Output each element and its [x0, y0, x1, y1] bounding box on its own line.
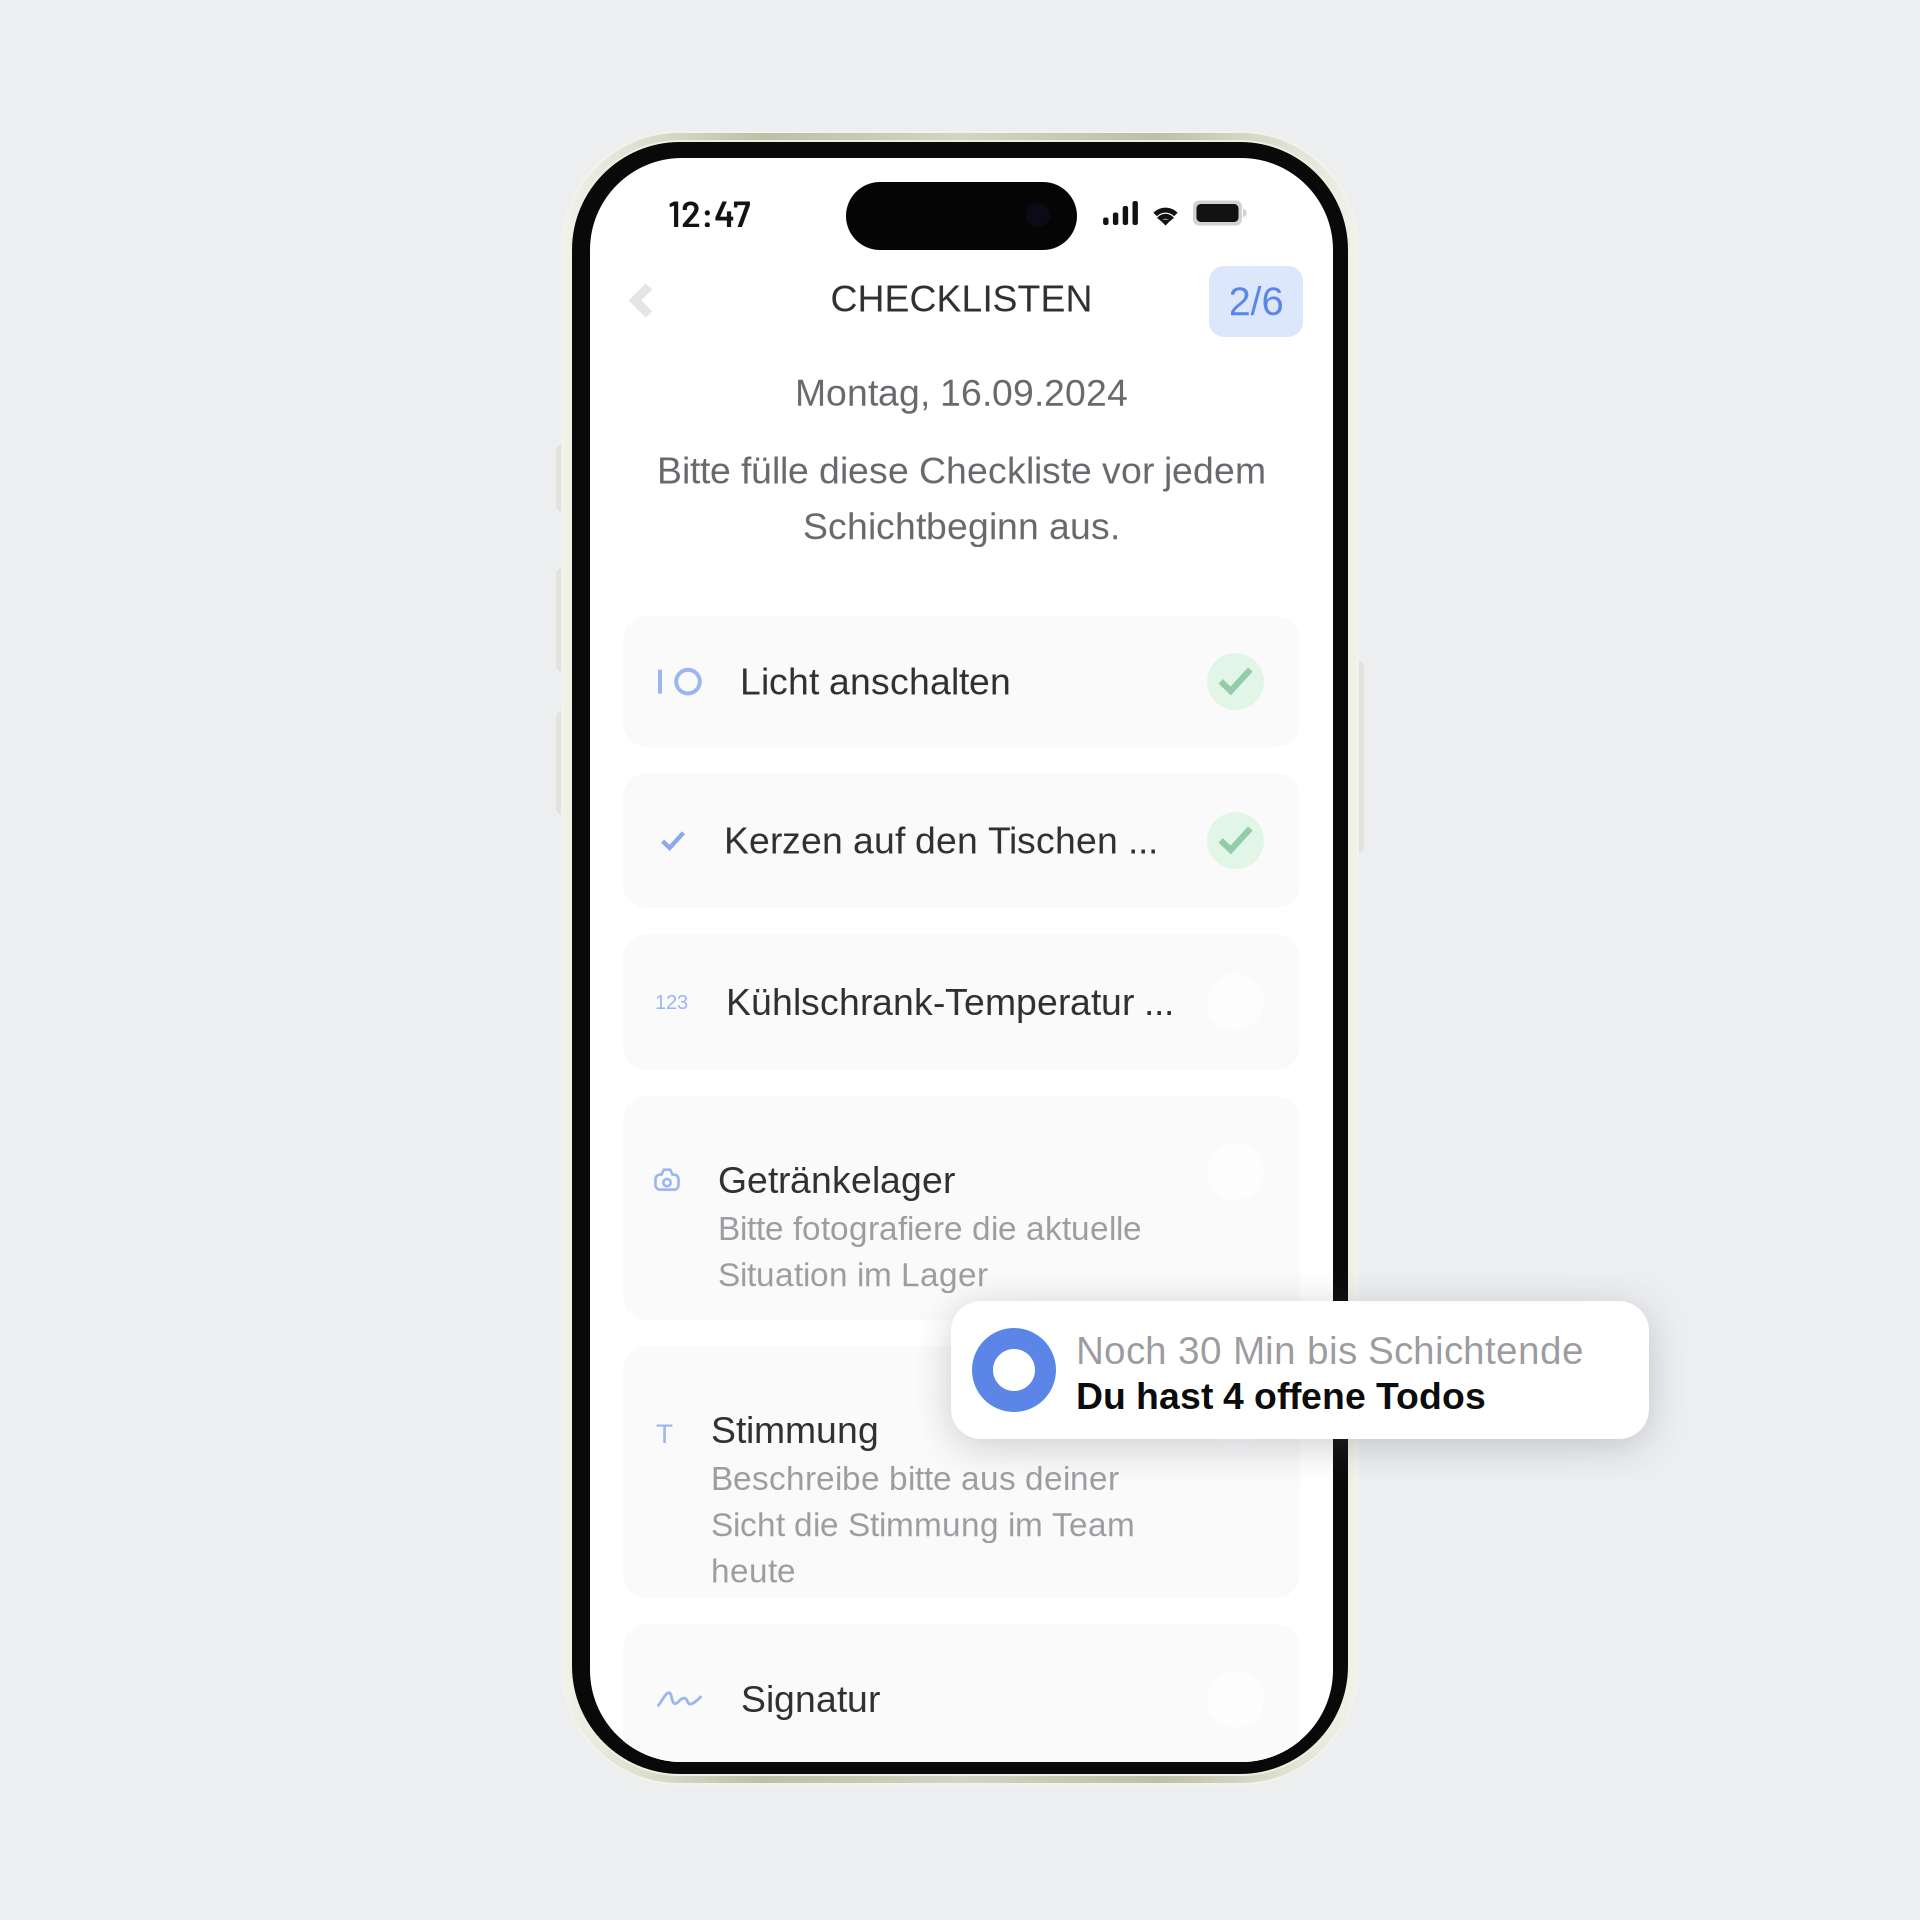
button[interactable]: Noch 30 Min bis Schichtende: [951, 1301, 1649, 1439]
staticText: 2/6: [1228, 279, 1283, 324]
staticText: Licht anschalten: [740, 661, 1011, 702]
staticText: Kerzen auf den Tischen ...: [724, 820, 1158, 861]
button[interactable]: Kerzen auf den Tischen ...: [623, 773, 1300, 908]
staticText: CHECKLISTEN: [830, 278, 1092, 319]
button[interactable]: 123: [623, 934, 1300, 1070]
staticText: heute: [711, 1552, 796, 1589]
button[interactable]: Getränkelager: [623, 1096, 1300, 1320]
button[interactable]: Back: [616, 269, 668, 331]
staticText: Schichtbeginn aus.: [803, 505, 1120, 547]
staticText: Signatur: [741, 1678, 880, 1720]
staticText: Bitte fülle diese Checkliste vor jedem: [657, 450, 1266, 491]
staticText: Beschreibe bitte aus deiner: [711, 1460, 1119, 1497]
staticText: Kühlschrank-Temperatur ...: [726, 981, 1174, 1023]
button[interactable]: 2/6: [1207, 270, 1301, 341]
staticText: 12:47: [668, 191, 751, 235]
staticText: T: [656, 1418, 673, 1449]
staticText: Bitte fotografiere die aktuelle: [718, 1210, 1142, 1247]
staticText: Sicht die Stimmung im Team: [711, 1506, 1135, 1543]
staticText: Montag, 16.09.2024: [795, 372, 1128, 414]
staticText: Noch 30 Min bis Schichtende: [1076, 1329, 1584, 1372]
staticText: Situation im Lager: [718, 1256, 988, 1293]
staticText: Getränkelager: [718, 1159, 955, 1201]
staticText: Stimmung: [711, 1409, 879, 1451]
staticText: Du hast 4 offene Todos: [1076, 1375, 1486, 1417]
button[interactable]: T: [623, 1346, 1300, 1598]
button[interactable]: Licht anschalten: [623, 616, 1300, 747]
button[interactable]: Signatur: [623, 1624, 1300, 1774]
staticText: 123: [655, 991, 688, 1013]
